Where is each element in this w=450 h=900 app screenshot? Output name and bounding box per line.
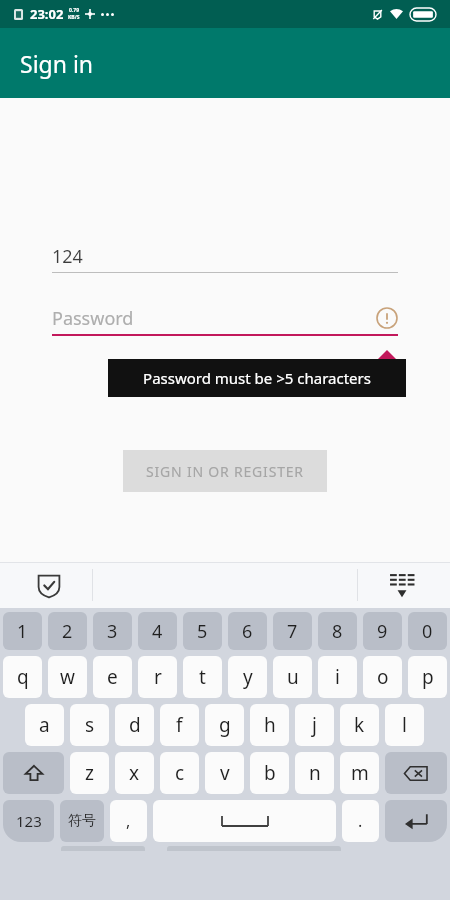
staticText: x <box>129 760 140 786</box>
staticText: w <box>60 664 75 690</box>
staticText: s <box>85 712 95 738</box>
staticText: 符号 <box>68 812 96 830</box>
button[interactable]: 8 <box>318 612 357 650</box>
button[interactable]: 1 <box>3 612 42 650</box>
button[interactable]: 符号 <box>60 800 104 842</box>
button[interactable]: Space <box>153 800 336 842</box>
button[interactable]: SIGN IN OR REGISTER <box>123 450 327 492</box>
staticText: KB/S <box>68 14 80 21</box>
button[interactable]: p <box>408 656 447 698</box>
staticText: 23:02 <box>30 5 64 23</box>
button[interactable]: a <box>25 704 64 746</box>
button[interactable]: y <box>228 656 267 698</box>
staticText: 8 <box>332 619 343 644</box>
staticText: 0.79 <box>69 7 79 14</box>
button[interactable]: w <box>48 656 87 698</box>
staticText: e <box>107 664 118 690</box>
button[interactable]: 6 <box>228 612 267 650</box>
button[interactable]: Enter <box>385 800 447 842</box>
staticText: g <box>219 712 231 738</box>
button[interactable]: 3 <box>93 612 132 650</box>
staticText: 4 <box>152 619 163 644</box>
button[interactable]: t <box>183 656 222 698</box>
staticText: v <box>220 760 230 786</box>
staticText: c <box>175 760 185 786</box>
button[interactable]: s <box>70 704 109 746</box>
other: Error <box>376 307 398 329</box>
button[interactable]: v <box>205 752 244 794</box>
staticText: 5 <box>197 619 208 644</box>
staticText: q <box>17 664 29 690</box>
staticText: a <box>39 712 50 738</box>
staticText: 0 <box>422 619 433 644</box>
button[interactable]: u <box>273 656 312 698</box>
staticText: Password <box>52 306 134 331</box>
button[interactable]: g <box>205 704 244 746</box>
button[interactable]: x <box>115 752 154 794</box>
staticText: o <box>377 664 389 690</box>
button[interactable]: 2 <box>48 612 87 650</box>
staticText: 7 <box>287 619 298 644</box>
button[interactable]: Privacy <box>32 562 66 608</box>
button[interactable]: m <box>340 752 379 794</box>
button[interactable]: f <box>160 704 199 746</box>
staticText: Sign in <box>20 48 94 79</box>
button[interactable]: j <box>295 704 334 746</box>
button[interactable]: h <box>250 704 289 746</box>
button[interactable]: 9 <box>363 612 402 650</box>
staticText: Password must be >5 characters <box>143 368 371 388</box>
button[interactable]: q <box>3 656 42 698</box>
staticText: r <box>154 664 162 690</box>
button[interactable]: Shift <box>3 752 64 794</box>
button[interactable]: d <box>115 704 154 746</box>
staticText: j <box>312 712 317 738</box>
button[interactable]: Hide keyboard <box>384 562 420 608</box>
button[interactable]: 123 <box>3 800 54 842</box>
button[interactable]: e <box>93 656 132 698</box>
button[interactable]: Backspace <box>385 752 447 794</box>
staticText: d <box>129 712 141 738</box>
button[interactable]: 124 <box>52 240 398 272</box>
staticText: , <box>126 810 131 832</box>
button[interactable]: , <box>110 800 147 842</box>
staticText: l <box>402 712 407 738</box>
staticText: b <box>264 760 276 786</box>
staticText: u <box>287 664 299 690</box>
staticText: 6 <box>242 619 253 644</box>
staticText: f <box>176 712 183 738</box>
button[interactable]: 0 <box>408 612 447 650</box>
staticText: p <box>422 664 434 690</box>
button[interactable]: 5 <box>183 612 222 650</box>
button[interactable]: o <box>363 656 402 698</box>
staticText: 3 <box>107 619 118 644</box>
button[interactable]: b <box>250 752 289 794</box>
button[interactable]: Password <box>52 302 398 334</box>
button[interactable]: . <box>342 800 379 842</box>
staticText: SIGN IN OR REGISTER <box>146 462 304 481</box>
staticText: m <box>351 760 369 786</box>
staticText: 124 <box>52 244 83 269</box>
button[interactable]: 4 <box>138 612 177 650</box>
staticText: t <box>199 664 206 690</box>
staticText: . <box>358 810 363 832</box>
button[interactable]: c <box>160 752 199 794</box>
staticText: 1 <box>17 619 28 644</box>
staticText: z <box>85 760 94 786</box>
button[interactable]: l <box>385 704 424 746</box>
button[interactable]: r <box>138 656 177 698</box>
staticText: 2 <box>62 619 73 644</box>
staticText: y <box>243 664 253 690</box>
staticText: 123 <box>16 811 42 831</box>
button[interactable]: i <box>318 656 357 698</box>
button[interactable]: n <box>295 752 334 794</box>
staticText: n <box>309 760 321 786</box>
button[interactable]: k <box>340 704 379 746</box>
staticText: h <box>264 712 276 738</box>
staticText: i <box>335 664 340 690</box>
button[interactable]: z <box>70 752 109 794</box>
staticText: k <box>354 712 365 738</box>
button[interactable]: 7 <box>273 612 312 650</box>
staticText: 9 <box>377 619 388 644</box>
